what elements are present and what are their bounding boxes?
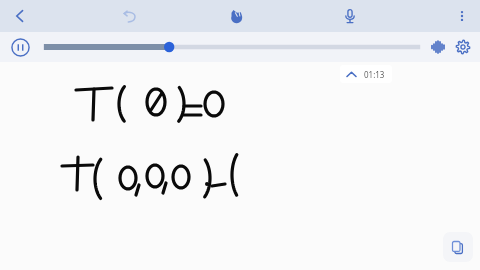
button[interactable]: Undo — [112, 0, 146, 32]
button[interactable]: Audio waveform — [425, 34, 451, 60]
button[interactable]: Pause — [6, 33, 34, 61]
button[interactable]: Back — [2, 0, 38, 32]
button[interactable]: More options — [446, 0, 478, 32]
button[interactable]: Select tool — [219, 0, 253, 32]
button[interactable]: Copy — [443, 232, 473, 262]
button[interactable]: Microphone — [333, 0, 367, 32]
button[interactable]: Settings — [450, 34, 476, 60]
button[interactable]: Seek bar — [40, 34, 426, 60]
staticText: 01:13 — [364, 69, 385, 80]
button[interactable]: 01:13 — [340, 65, 392, 83]
